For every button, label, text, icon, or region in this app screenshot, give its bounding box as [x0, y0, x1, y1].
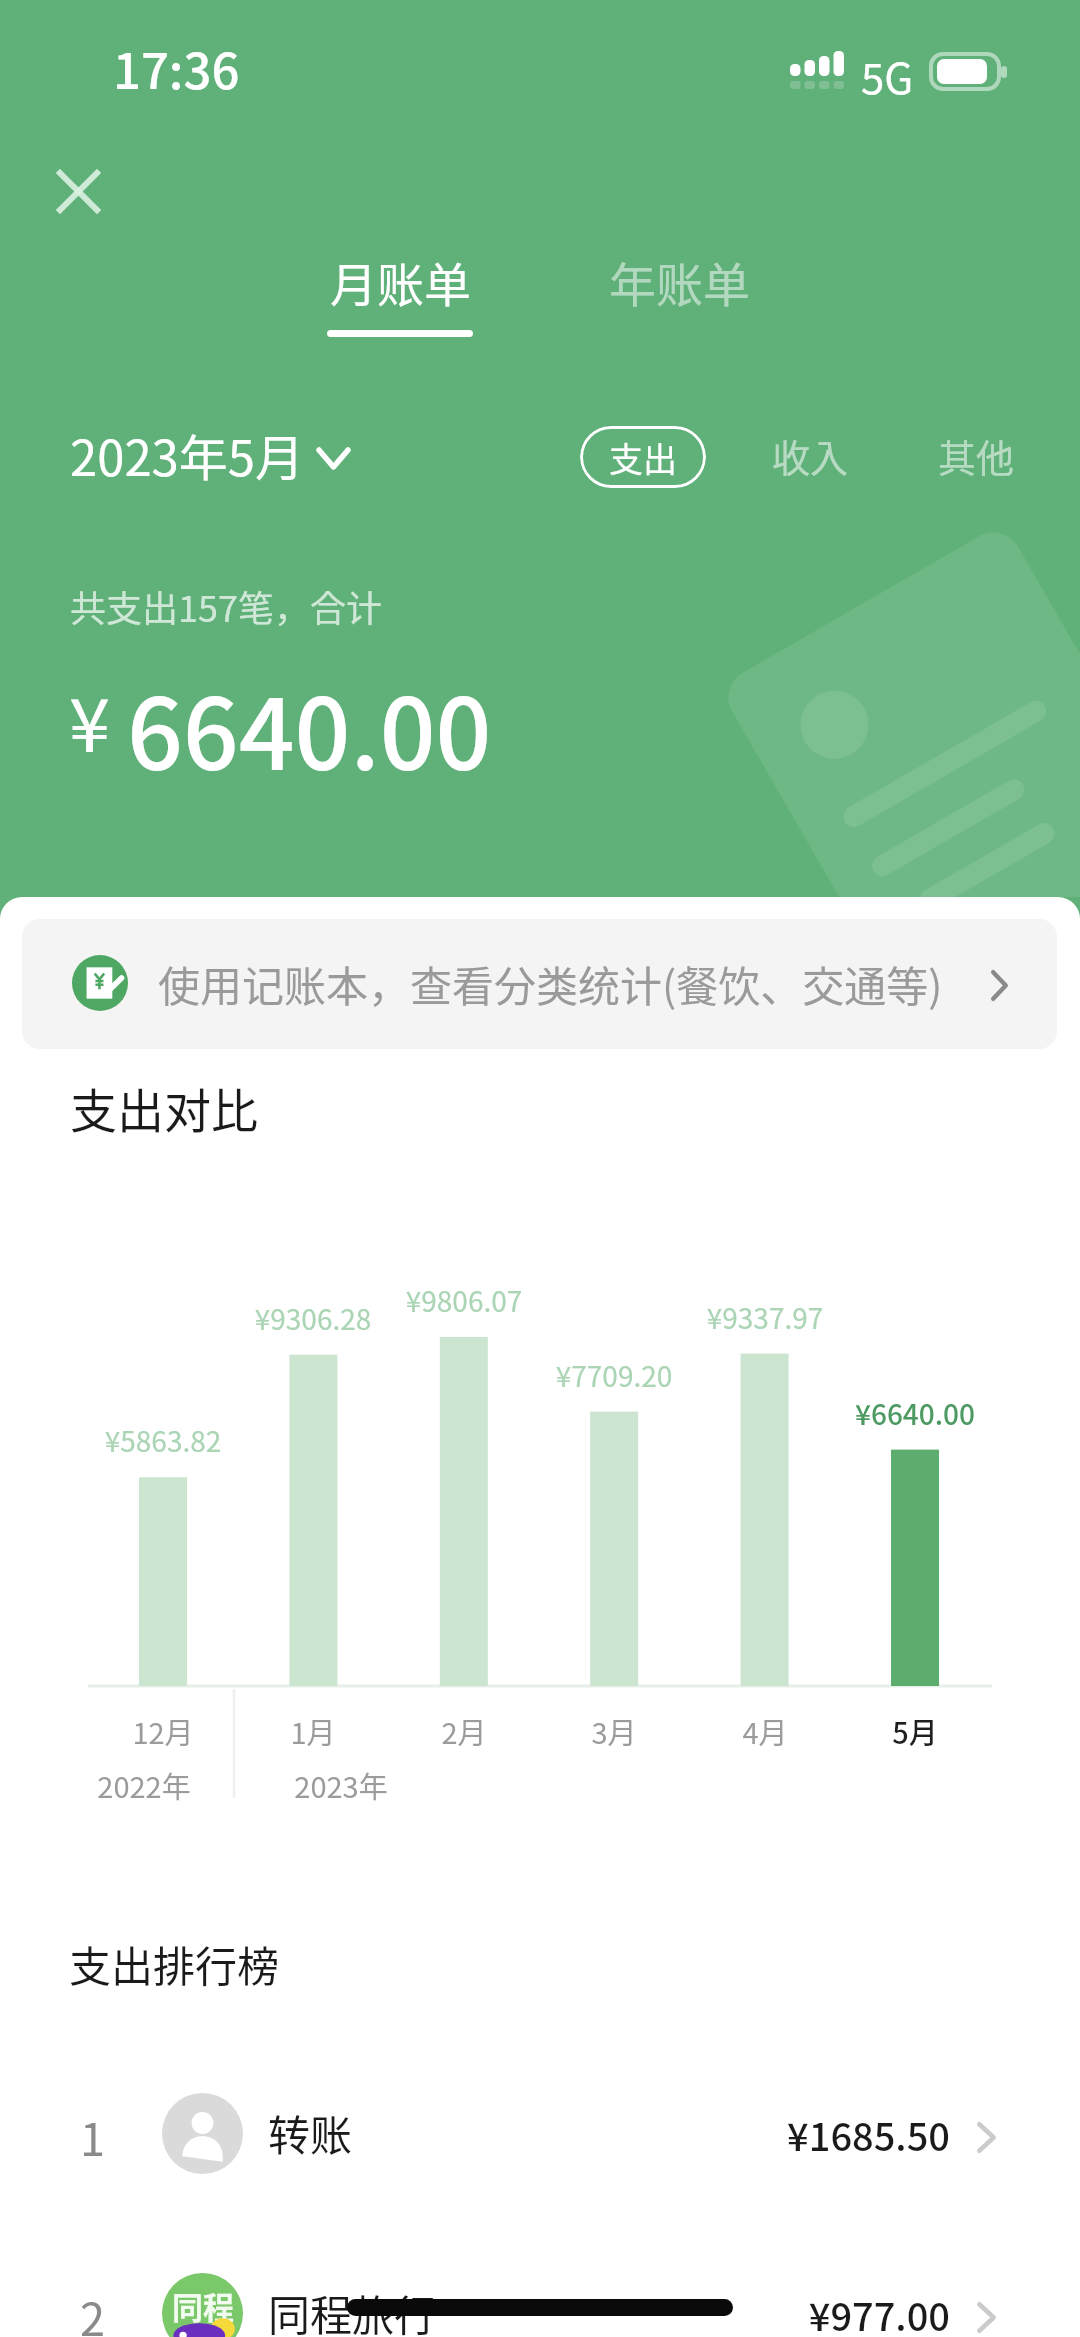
staticText: 6640.00: [127, 656, 492, 798]
staticText: 4月: [645, 1710, 885, 1752]
staticText: ¥: [69, 666, 111, 773]
staticText: 收入: [772, 428, 849, 483]
staticText: 17:36: [113, 32, 240, 103]
button[interactable]: 收入: [772, 428, 849, 483]
staticText: ¥9337.97: [645, 1297, 885, 1338]
staticText: 支出排行榜: [69, 1933, 280, 1994]
button[interactable]: 2: [0, 2240, 1080, 2337]
staticText: 5月: [795, 1710, 1035, 1752]
staticText: ¥6640.00: [795, 1393, 1035, 1434]
staticText: 2023年: [221, 1764, 461, 1806]
staticText: 2: [80, 2284, 105, 2337]
button[interactable]: 其他: [938, 428, 1015, 483]
staticText: 5G: [861, 45, 914, 106]
staticText: ¥977.00: [650, 2287, 950, 2337]
button[interactable]: 支出: [580, 426, 706, 488]
staticText: 3月: [494, 1710, 734, 1752]
staticText: 12月: [43, 1710, 283, 1752]
staticText: ¥1685.50: [650, 2107, 950, 2162]
staticText: 支出对比: [70, 1073, 258, 1141]
staticText: 共支出157笔，合计: [70, 580, 382, 632]
staticText: 转账: [268, 2102, 353, 2163]
staticText: 2023年5月: [70, 419, 304, 490]
staticText: ¥5863.82: [43, 1420, 283, 1461]
button[interactable]: 1: [0, 2060, 1080, 2190]
staticText: 1月: [193, 1710, 433, 1752]
button[interactable]: 年账单: [598, 247, 761, 315]
staticText: 月账单: [330, 247, 471, 315]
staticText: 支出: [609, 433, 677, 482]
staticText: ¥9806.07: [344, 1280, 584, 1321]
staticText: ¥9306.28: [193, 1298, 433, 1339]
staticText: 2月: [344, 1710, 584, 1752]
button[interactable]: 月账单: [320, 247, 480, 315]
staticText: 同程旅行: [268, 2282, 437, 2337]
staticText: 使用记账本，查看分类统计(餐饮、交通等): [158, 953, 943, 1014]
staticText: 其他: [938, 428, 1015, 483]
button[interactable]: 2023年5月: [70, 419, 351, 490]
button[interactable]: 使用记账本，查看分类统计(餐饮、交通等): [22, 919, 1057, 1049]
staticText: 1: [80, 2104, 105, 2169]
button[interactable]: Close: [40, 153, 116, 229]
staticText: 年账单: [609, 247, 750, 315]
staticText: 2022年: [24, 1764, 264, 1806]
staticText: ¥7709.20: [494, 1355, 734, 1396]
staticText: 同程: [172, 2283, 234, 2328]
